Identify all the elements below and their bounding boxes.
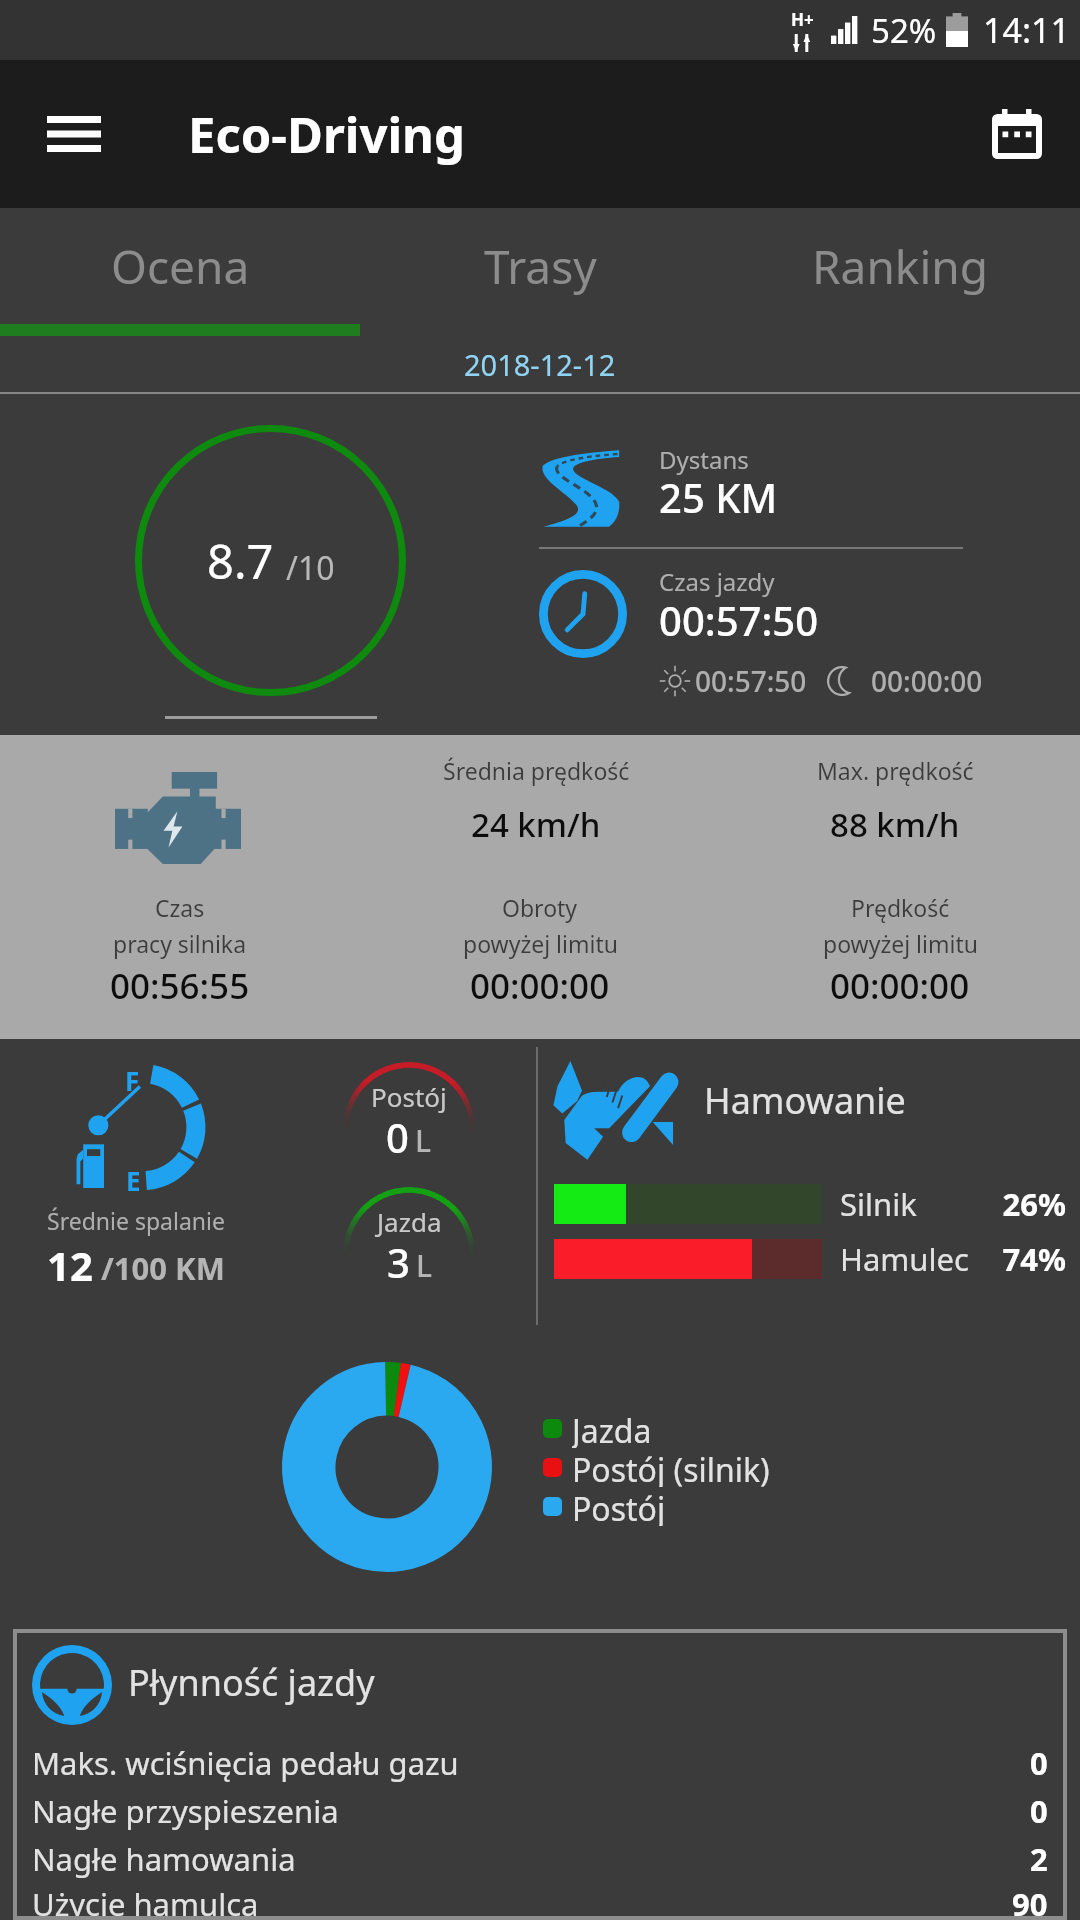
staticText: 3	[387, 1235, 410, 1289]
staticText: 90	[1012, 1883, 1048, 1916]
staticText: H+	[791, 8, 814, 31]
staticText: 88 km/h	[830, 802, 960, 847]
staticText: 74%	[1000, 1238, 1066, 1280]
button[interactable]: Ocena	[0, 208, 360, 324]
staticText: 24 km/h	[471, 802, 601, 847]
staticText: Czas jazdy	[659, 565, 775, 598]
staticText: Eco-Driving	[188, 101, 465, 168]
staticText: 0	[386, 1110, 409, 1164]
staticText: 2	[1030, 1838, 1048, 1880]
staticText: Hamowanie	[704, 1076, 906, 1125]
staticText: 00:00:00	[830, 962, 970, 1010]
staticText: Postój	[371, 1079, 447, 1114]
staticText: Jazda	[377, 1204, 442, 1239]
staticText: powyżej limitu	[463, 928, 618, 959]
staticText: powyżej limitu	[823, 928, 978, 959]
staticText: Nagłe przyspieszenia	[32, 1790, 1030, 1832]
staticText: pracy silnika	[113, 928, 247, 959]
staticText: 00:57:50	[695, 662, 807, 700]
staticText: Hamulec	[840, 1238, 1000, 1280]
staticText: Ocena	[111, 235, 250, 298]
staticText: Postój (silnik)	[572, 1448, 770, 1487]
button[interactable]: Select date	[972, 89, 1062, 179]
staticText: Maks. wciśnięcia pedału gazu	[32, 1742, 1030, 1784]
staticText: Czas	[155, 892, 205, 923]
staticText: Silnik	[840, 1183, 1000, 1225]
staticText: Obroty	[502, 892, 578, 923]
staticText: F	[125, 1063, 140, 1098]
staticText: Ranking	[812, 235, 988, 298]
staticText: Prędkość	[851, 892, 950, 923]
staticText: Dystans	[659, 443, 749, 476]
staticText: L	[415, 1120, 432, 1161]
staticText: Nagłe hamowania	[32, 1838, 1030, 1880]
button[interactable]: Trasy	[360, 208, 720, 324]
staticText: 0	[1030, 1790, 1048, 1832]
staticText: Postój	[572, 1487, 666, 1526]
staticText: 12	[47, 1238, 93, 1292]
staticText: 8.7	[207, 529, 274, 593]
staticText: Max. prędkość	[817, 755, 974, 786]
staticText: 00:00:00	[871, 662, 983, 700]
staticText: Trasy	[484, 235, 597, 298]
staticText: 00:56:55	[110, 962, 250, 1010]
staticText: Średnia prędkość	[443, 755, 630, 786]
staticText: 26%	[1000, 1183, 1066, 1225]
button[interactable]: Ranking	[720, 208, 1080, 324]
staticText: 00:00:00	[470, 962, 610, 1010]
staticText: L	[416, 1245, 433, 1286]
staticText: /100 KM	[101, 1247, 225, 1289]
button[interactable]: Open navigation menu	[28, 88, 120, 180]
button[interactable]: 2018-12-12	[0, 336, 1080, 392]
staticText: Płynność jazdy	[128, 1658, 375, 1707]
staticText: 25 KM	[659, 470, 778, 524]
staticText: 14:11	[983, 7, 1070, 53]
staticText: E	[126, 1163, 141, 1198]
staticText: Jazda	[572, 1409, 652, 1448]
staticText: 2018-12-12	[464, 345, 616, 384]
staticText: 00:57:50	[659, 593, 819, 647]
staticText: 52%	[871, 8, 937, 53]
staticText: /10	[286, 546, 335, 590]
staticText: Średnie spalanie	[47, 1205, 225, 1236]
staticText: 0	[1030, 1742, 1048, 1784]
staticText: Użycie hamulca	[32, 1883, 1012, 1916]
